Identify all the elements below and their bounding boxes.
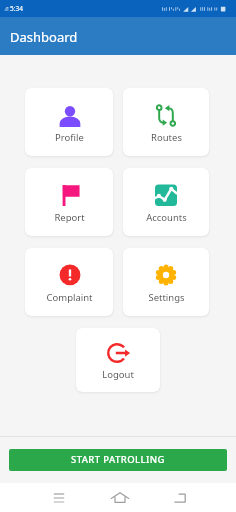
- staticText: Accounts: [146, 211, 187, 224]
- staticText: Profile: [55, 131, 84, 144]
- button[interactable]: Complaint: [25, 248, 113, 316]
- staticText: Routes: [151, 131, 182, 144]
- staticText: Complaint: [46, 291, 93, 304]
- staticText: Dashboard: [10, 28, 78, 46]
- button[interactable]: Recent apps: [39, 483, 79, 512]
- button[interactable]: START PATROLLING: [9, 449, 227, 471]
- staticText: Report: [54, 211, 85, 224]
- button[interactable]: Accounts: [123, 168, 209, 236]
- button[interactable]: Routes: [123, 88, 209, 156]
- staticText: Settings: [148, 291, 185, 304]
- button[interactable]: Home: [100, 483, 140, 512]
- button[interactable]: Report: [25, 168, 113, 236]
- staticText: START PATROLLING: [71, 453, 165, 466]
- button[interactable]: Back: [160, 483, 200, 512]
- button[interactable]: Logout: [76, 328, 160, 392]
- staticText: 5:34: [10, 4, 23, 13]
- button[interactable]: Settings: [123, 248, 209, 316]
- button[interactable]: Profile: [25, 88, 113, 156]
- staticText: Logout: [102, 368, 134, 381]
